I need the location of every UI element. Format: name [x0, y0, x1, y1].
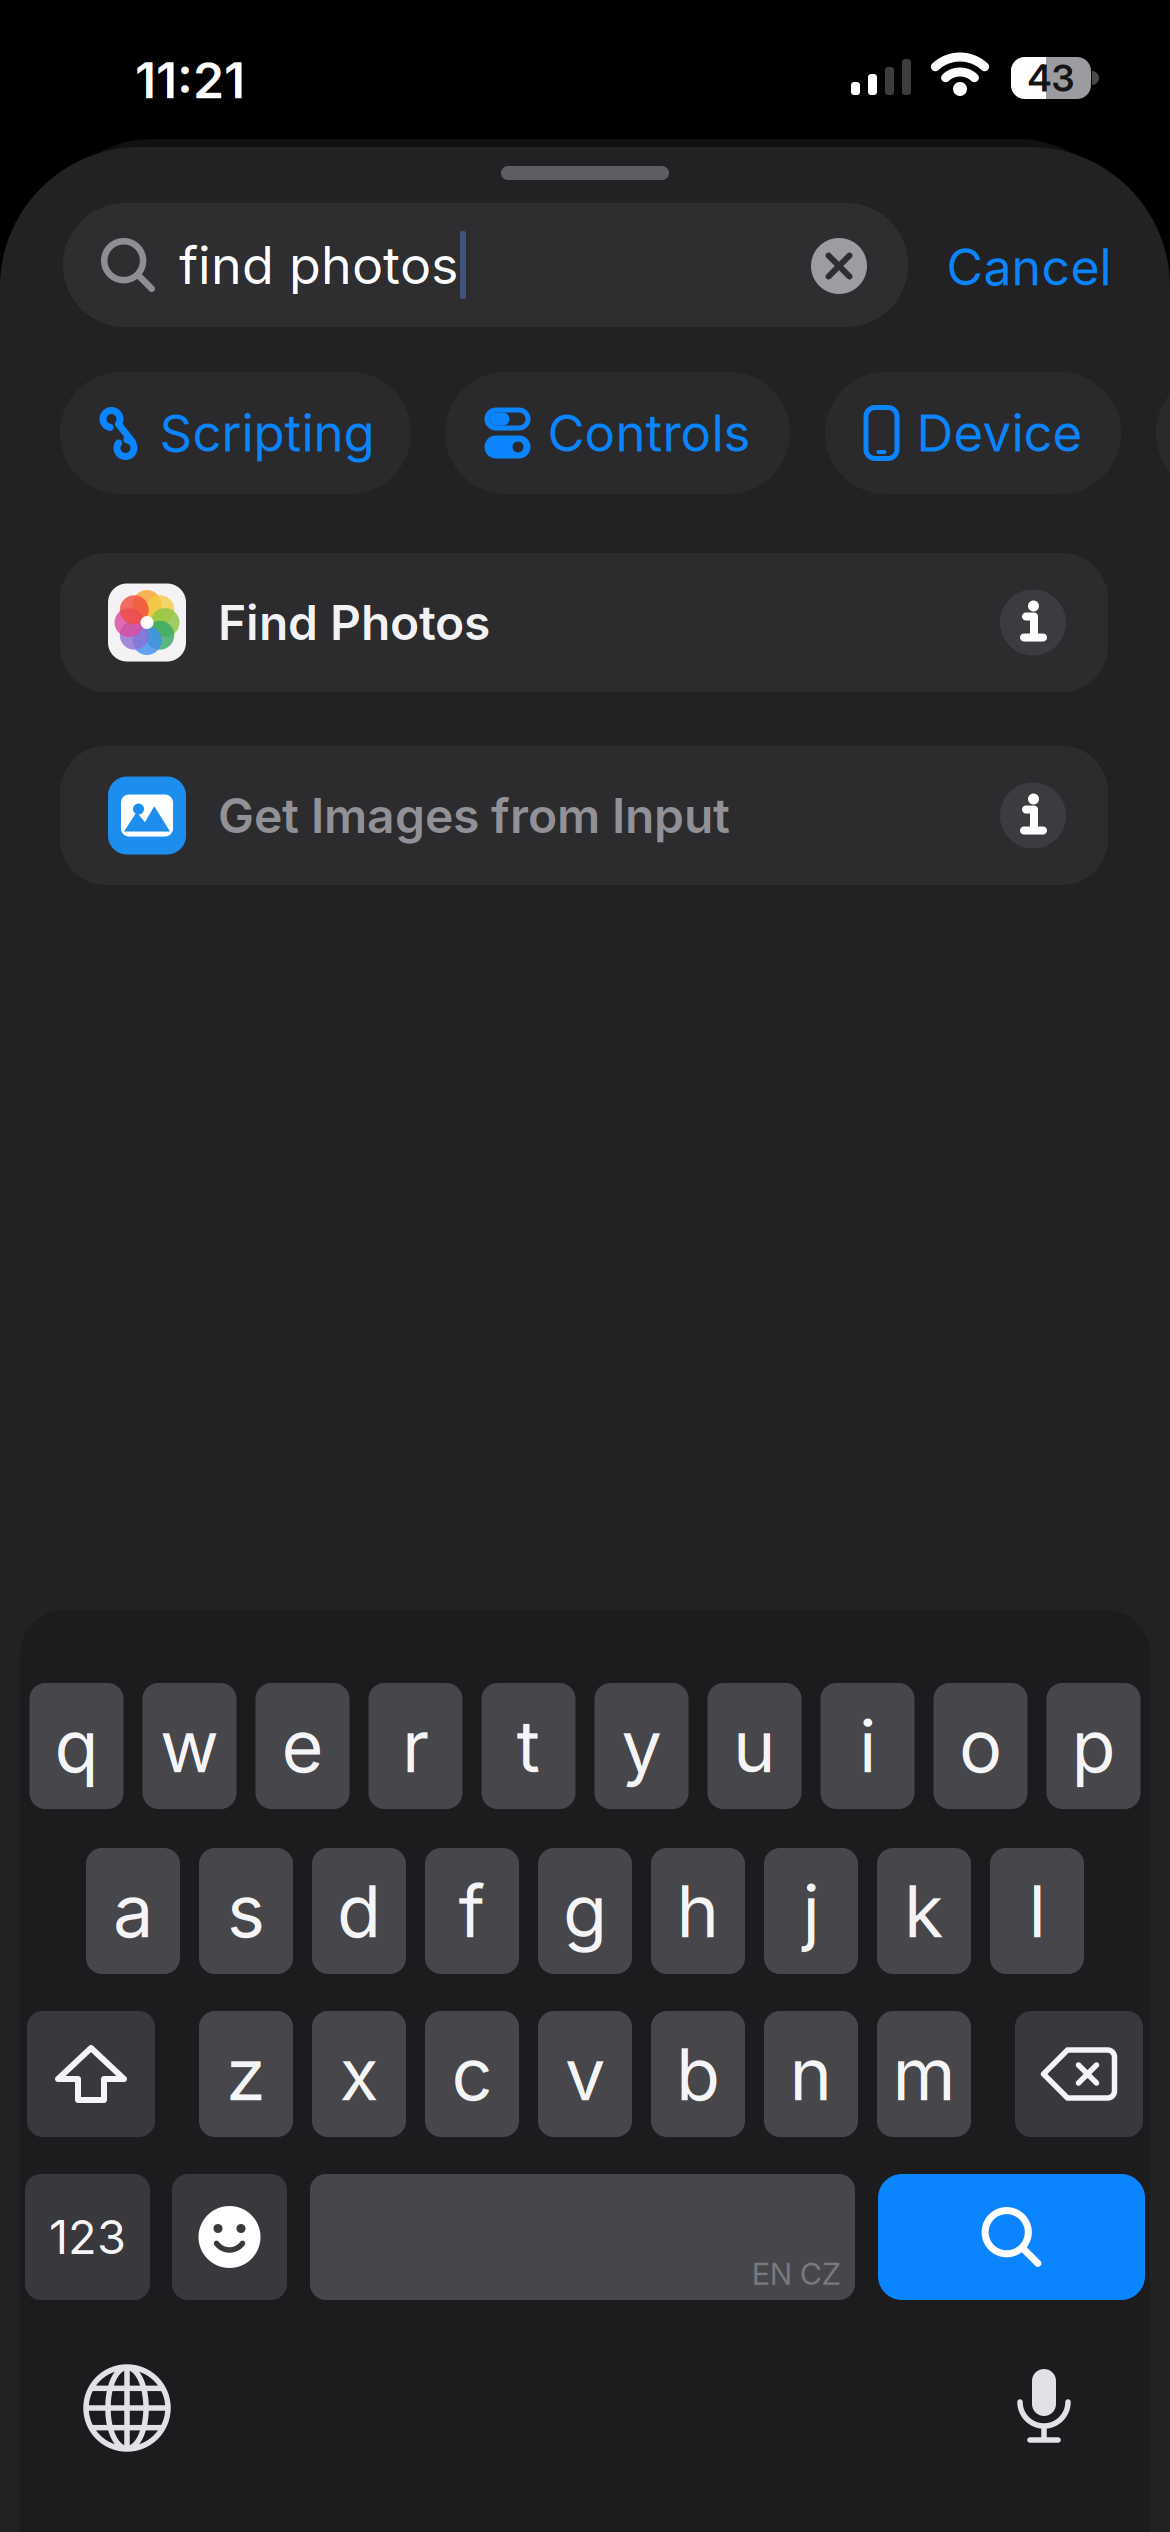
button[interactable]: Emoji	[172, 2174, 287, 2300]
button[interactable]: c	[425, 2011, 519, 2137]
button[interactable]: Cancel	[946, 237, 1111, 297]
staticText: 123	[49, 2209, 126, 2265]
button[interactable]: v	[538, 2011, 632, 2137]
button[interactable]: Location	[1156, 372, 1170, 494]
staticText: l	[1028, 1867, 1045, 1954]
button[interactable]: Find Photos	[60, 553, 1108, 692]
staticText: Cancel	[946, 237, 1111, 297]
staticText: b	[676, 2030, 720, 2117]
button[interactable]: e	[255, 1683, 349, 1809]
staticText: o	[959, 1702, 1002, 1789]
staticText: k	[904, 1867, 944, 1954]
staticText: f	[458, 1867, 485, 1954]
button[interactable]: Clear text	[811, 238, 867, 294]
staticText: m	[892, 2030, 955, 2117]
button[interactable]: b	[651, 2011, 745, 2137]
button[interactable]: p	[1046, 1683, 1140, 1809]
staticText: y	[621, 1702, 661, 1789]
staticText: Controls	[547, 402, 750, 464]
button[interactable]: h	[651, 1848, 745, 1974]
button[interactable]: Search	[878, 2174, 1145, 2300]
button[interactable]: j	[764, 1848, 858, 1974]
button[interactable]: z	[199, 2011, 293, 2137]
button[interactable]: Space	[310, 2174, 855, 2300]
staticText: q	[54, 1702, 98, 1789]
staticText: EN CZ	[752, 2256, 841, 2292]
staticText: t	[516, 1702, 540, 1789]
staticText: find photos	[179, 233, 458, 296]
button[interactable]: Controls	[445, 372, 790, 494]
staticText: Get Images from Input	[218, 786, 730, 845]
button[interactable]: Dictation	[1016, 2368, 1072, 2444]
staticText: Device	[916, 402, 1082, 464]
button[interactable]: w	[142, 1683, 236, 1809]
button[interactable]: Details	[1000, 589, 1066, 655]
staticText: Scripting	[159, 402, 374, 464]
staticText: r	[402, 1702, 429, 1789]
button[interactable]: Next keyboard	[85, 2366, 169, 2450]
button[interactable]: Details	[1000, 782, 1066, 848]
button[interactable]: k	[877, 1848, 971, 1974]
button[interactable]: q	[29, 1683, 123, 1809]
button[interactable]: g	[538, 1848, 632, 1974]
staticText: Find Photos	[218, 593, 490, 652]
button[interactable]: t	[481, 1683, 575, 1809]
staticText: w	[160, 1702, 219, 1789]
button[interactable]: o	[933, 1683, 1027, 1809]
staticText: u	[733, 1702, 776, 1789]
staticText: c	[451, 2030, 492, 2117]
button[interactable]: Get Images from Input	[60, 746, 1108, 885]
staticText: 11:21	[135, 50, 245, 110]
button[interactable]: 123	[25, 2174, 150, 2300]
staticText: 43	[1027, 56, 1074, 100]
button[interactable]: y	[594, 1683, 688, 1809]
staticText: e	[281, 1702, 323, 1789]
staticText: i	[859, 1702, 876, 1789]
button[interactable]: m	[877, 2011, 971, 2137]
staticText: g	[563, 1867, 607, 1954]
staticText: a	[113, 1867, 153, 1954]
button[interactable]: i	[820, 1683, 914, 1809]
staticText: x	[339, 2030, 378, 2117]
staticText: s	[227, 1867, 265, 1954]
button[interactable]: l	[990, 1848, 1084, 1974]
button[interactable]: Device	[825, 372, 1121, 494]
staticText: z	[226, 2030, 266, 2117]
button[interactable]: n	[764, 2011, 858, 2137]
button[interactable]: Search	[63, 203, 908, 327]
staticText: j	[802, 1867, 819, 1954]
button[interactable]: s	[199, 1848, 293, 1974]
staticText: v	[565, 2030, 605, 2117]
button[interactable]: d	[312, 1848, 406, 1974]
button[interactable]: r	[368, 1683, 462, 1809]
button[interactable]: a	[86, 1848, 180, 1974]
button[interactable]: u	[707, 1683, 801, 1809]
staticText: n	[789, 2030, 832, 2117]
staticText: p	[1071, 1702, 1115, 1789]
staticText: d	[337, 1867, 381, 1954]
button[interactable]: Shift	[27, 2011, 155, 2137]
button[interactable]: Delete	[1015, 2011, 1143, 2137]
button[interactable]: x	[312, 2011, 406, 2137]
staticText: h	[676, 1867, 719, 1954]
button[interactable]: Scripting	[60, 372, 411, 494]
button[interactable]: f	[425, 1848, 519, 1974]
